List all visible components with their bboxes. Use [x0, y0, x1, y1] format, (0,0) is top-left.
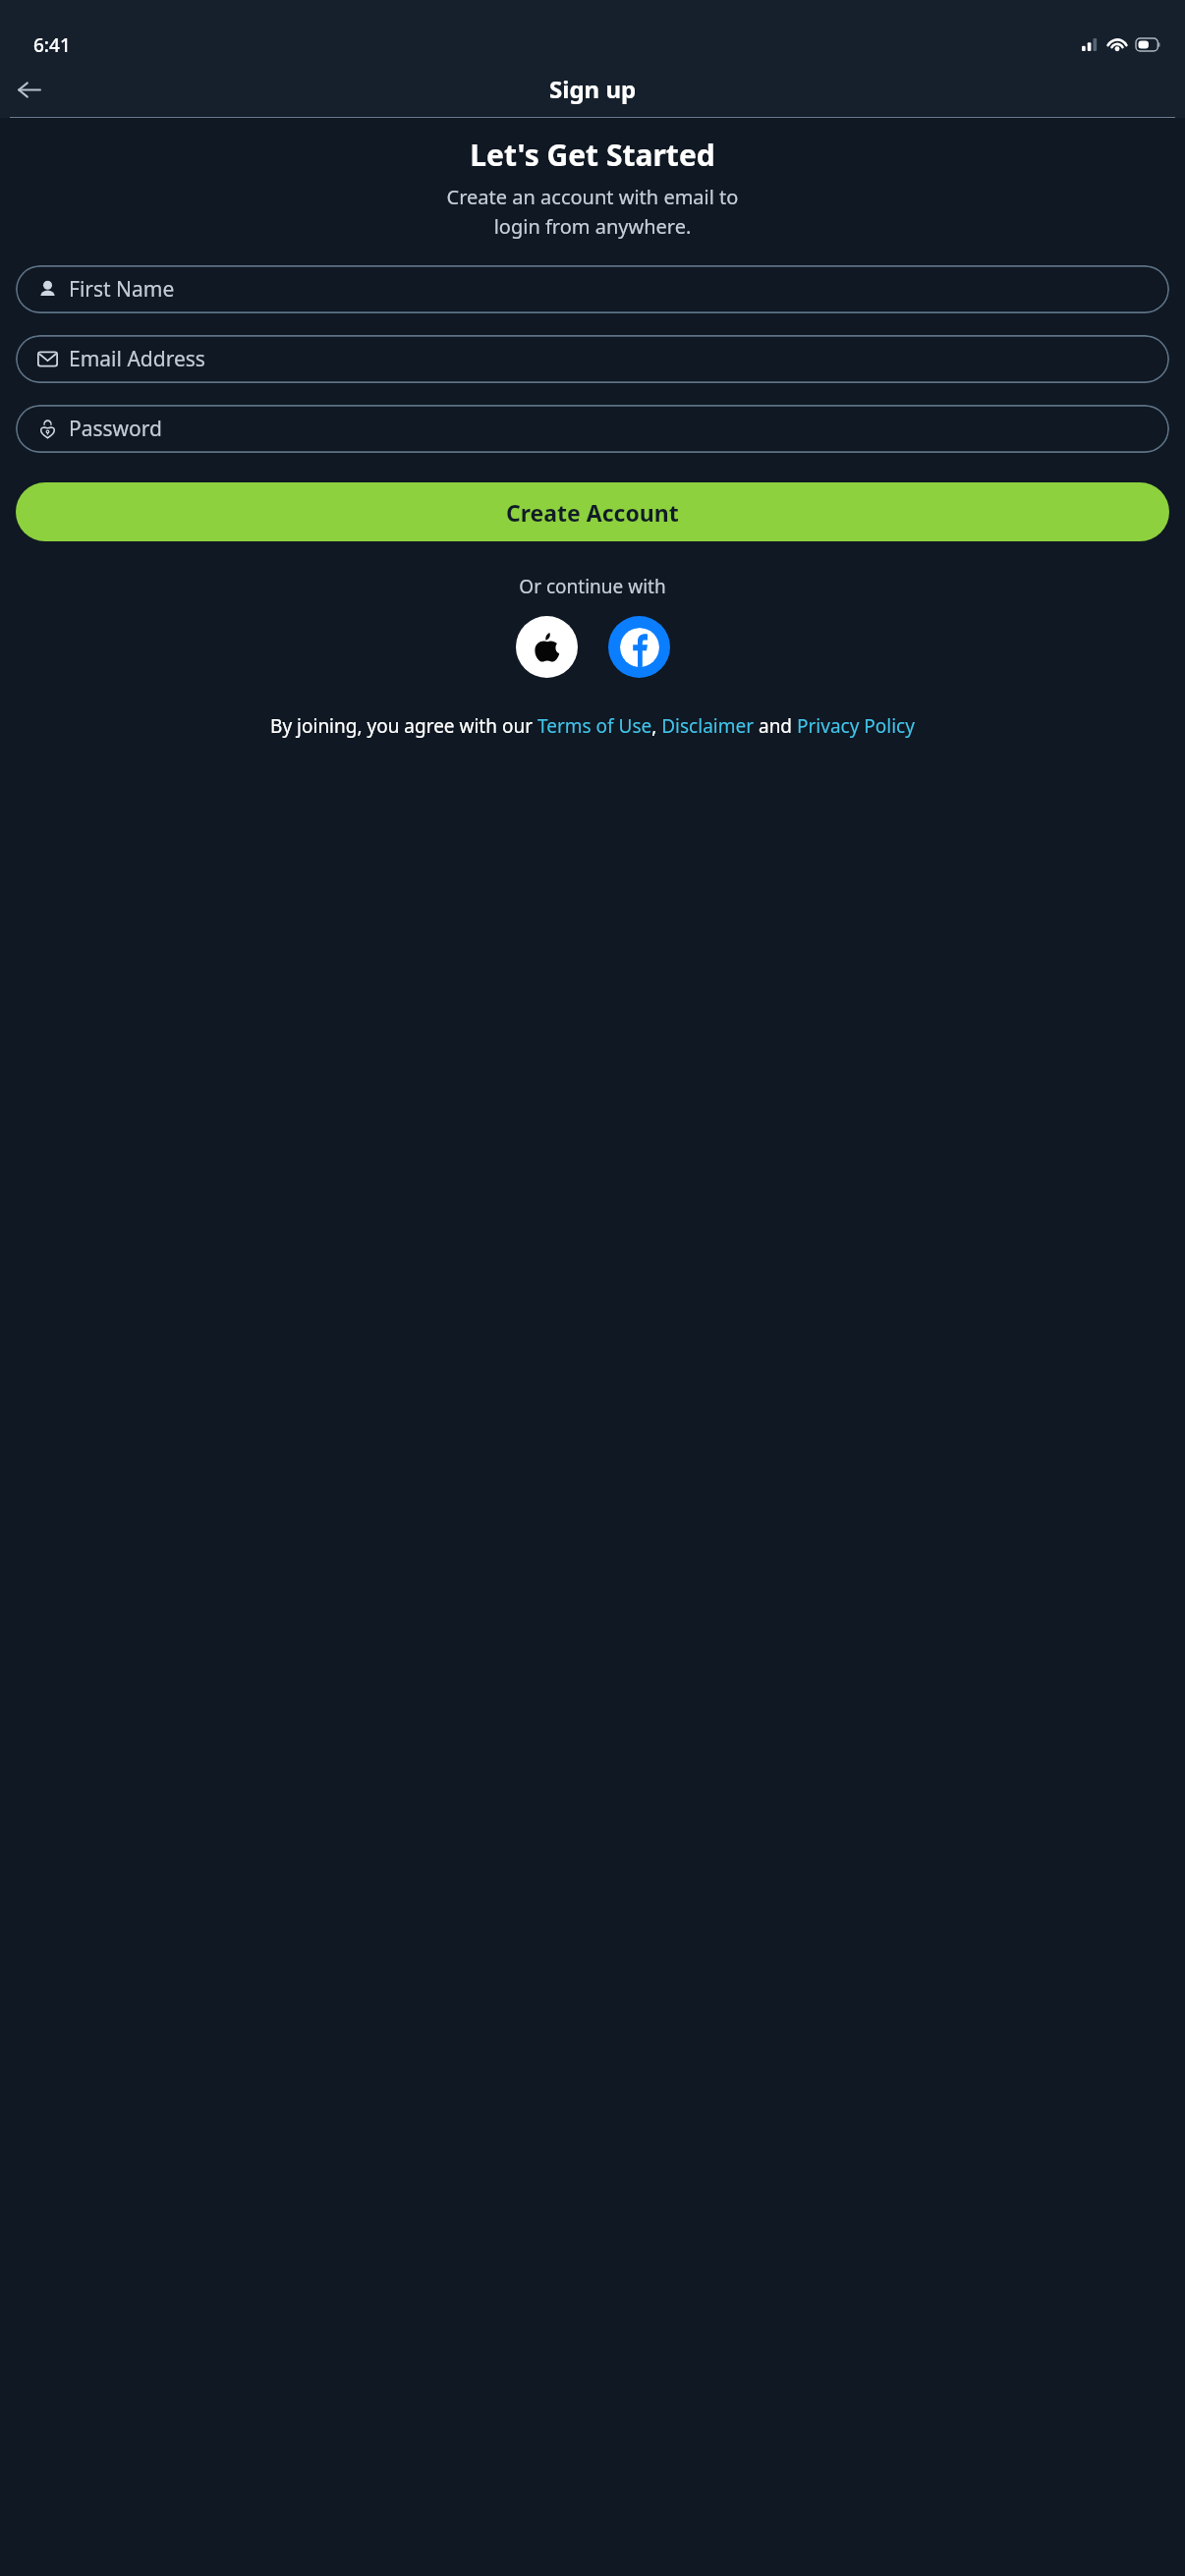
- staticText: Create an account with email to login fr…: [0, 184, 1185, 240]
- staticText: First Name: [69, 275, 175, 304]
- staticText: Or continue with: [0, 574, 1185, 599]
- button[interactable]: Email Address: [16, 335, 1169, 383]
- staticText: Email Address: [69, 345, 205, 373]
- staticText: Create Account: [506, 497, 679, 528]
- staticText: Password: [69, 415, 162, 443]
- staticText: 6:41: [33, 32, 71, 58]
- button[interactable]: By joining, you agree with our Terms of …: [43, 713, 1142, 739]
- staticText: Sign up: [549, 73, 637, 105]
- button[interactable]: Continue with Facebook: [608, 616, 670, 678]
- staticText: Let's Get Started: [0, 135, 1185, 175]
- button[interactable]: First Name: [16, 265, 1169, 313]
- button[interactable]: Continue with Apple: [516, 616, 578, 678]
- button[interactable]: Create Account: [16, 482, 1169, 541]
- button[interactable]: Back: [6, 67, 51, 112]
- button[interactable]: Password: [16, 405, 1169, 453]
